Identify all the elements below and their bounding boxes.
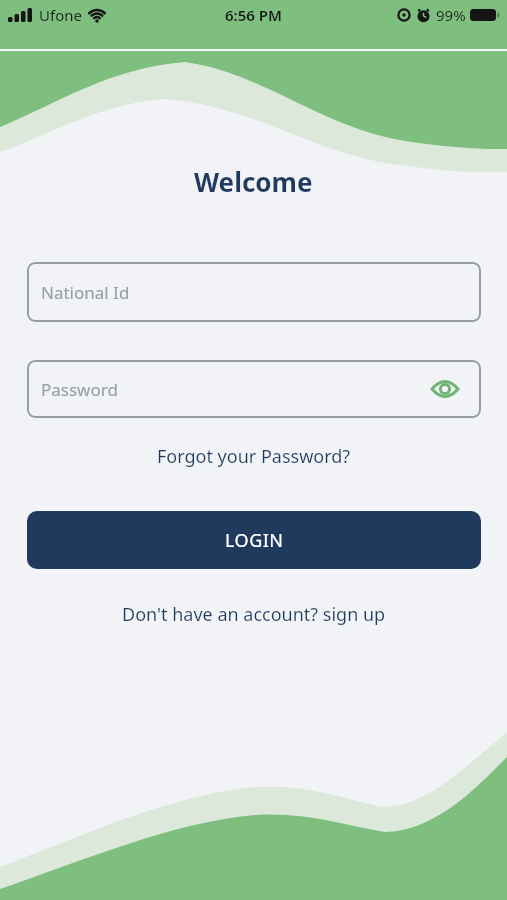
button[interactable]: Don't have an account? sign up <box>118 598 390 631</box>
button[interactable]: Forgot your Password? <box>153 440 355 473</box>
staticText: Password <box>41 378 118 401</box>
staticText: 6:56 PM <box>225 5 282 25</box>
staticText: Ufone <box>39 5 82 25</box>
staticText: LOGIN <box>225 528 284 553</box>
button[interactable]: National Id <box>27 262 481 322</box>
staticText: 99% <box>436 5 466 25</box>
staticText: National Id <box>41 281 130 304</box>
button[interactable]: Password <box>27 360 481 418</box>
staticText: Forgot your Password? <box>157 444 351 469</box>
staticText: Welcome <box>194 164 313 199</box>
button[interactable] <box>428 372 462 406</box>
button[interactable]: LOGIN <box>27 511 481 569</box>
staticText: Don't have an account? sign up <box>122 602 386 627</box>
